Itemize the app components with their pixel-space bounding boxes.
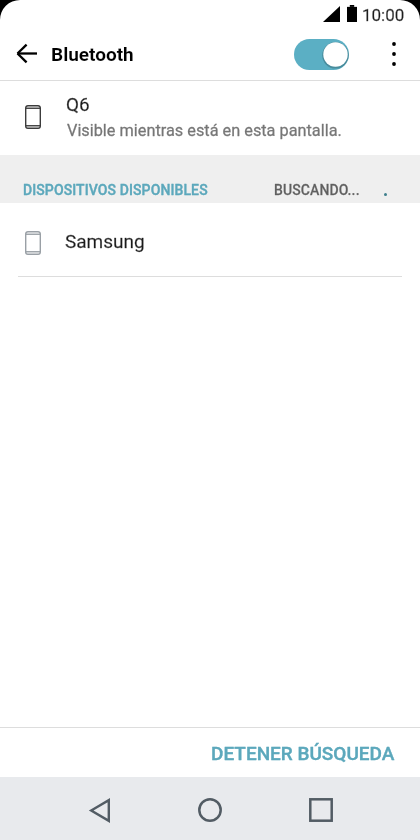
staticText: Samsung	[65, 230, 145, 252]
staticText: Visible mientras está en esta pantalla.	[67, 121, 342, 140]
button[interactable]: Samsung	[0, 203, 420, 276]
staticText: BUSCANDO...	[274, 182, 360, 198]
staticText: Q6	[66, 93, 90, 115]
staticText: DETENER BÚSQUEDA	[211, 742, 395, 764]
button[interactable]: DETENER BÚSQUEDA	[195, 731, 411, 775]
staticText: 10:00	[362, 5, 405, 25]
button[interactable]: Bluetooth on	[288, 33, 355, 76]
button[interactable]: Back	[78, 788, 122, 832]
staticText: 10:00	[362, 5, 405, 25]
staticText: Bluetooth	[51, 43, 134, 65]
button[interactable]: Recent apps	[299, 788, 343, 832]
button[interactable]: Home	[188, 788, 232, 832]
staticText: Q6	[66, 93, 90, 115]
staticText: DETENER BÚSQUEDA	[211, 742, 395, 764]
staticText: DISPOSITIVOS DISPONIBLES	[23, 182, 208, 198]
button[interactable]: Q6	[0, 81, 420, 155]
staticText: Visible mientras está en esta pantalla.	[67, 121, 342, 140]
button[interactable]: More options	[372, 32, 416, 76]
button[interactable]: Back	[1, 27, 53, 79]
staticText: Samsung	[65, 230, 145, 252]
staticText: DISPOSITIVOS DISPONIBLES	[23, 182, 208, 198]
staticText: BUSCANDO...	[274, 182, 360, 198]
